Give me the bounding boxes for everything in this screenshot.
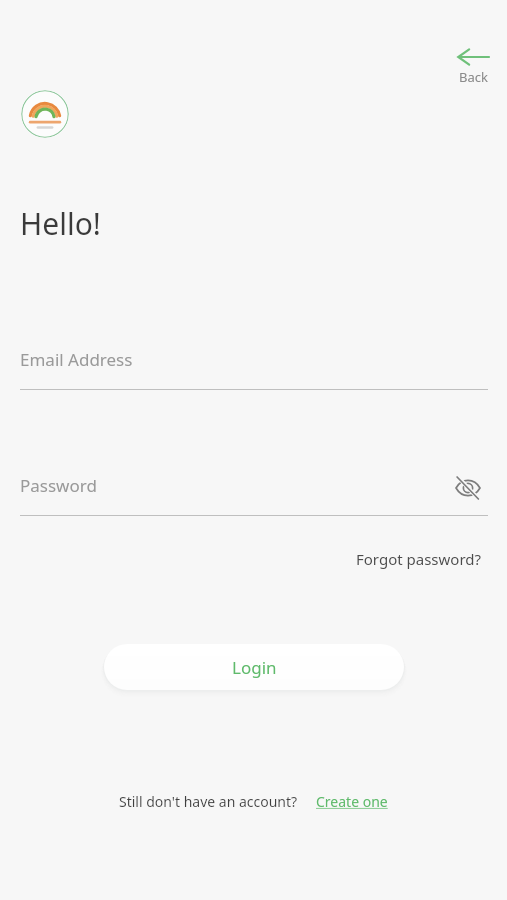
button[interactable]: Password	[20, 466, 488, 512]
button[interactable]: Toggle password visibility	[448, 468, 488, 508]
button[interactable]: Create one	[316, 792, 388, 811]
button[interactable]: Forgot password?	[350, 544, 488, 574]
button[interactable]: App logo	[21, 90, 69, 138]
staticText: Login	[232, 656, 277, 679]
staticText: Back	[459, 68, 488, 86]
button[interactable]: Login	[104, 644, 404, 690]
staticText: Password	[20, 474, 97, 497]
staticText: Create one	[316, 792, 388, 811]
staticText: Forgot password?	[356, 549, 482, 569]
staticText: Email Address	[20, 348, 133, 371]
staticText: Still don't have an account?	[119, 792, 298, 811]
staticText: Hello!	[20, 203, 101, 244]
button[interactable]: Back	[443, 44, 503, 90]
button[interactable]: Email Address	[20, 340, 488, 390]
